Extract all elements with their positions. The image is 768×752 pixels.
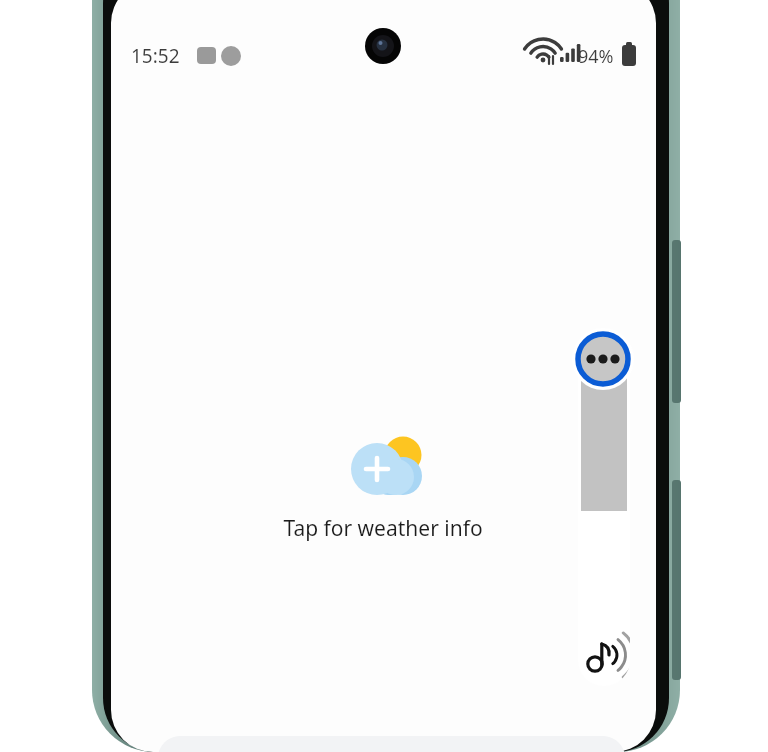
staticText: 15:52	[131, 43, 180, 69]
button[interactable]: Tap for weather info	[253, 430, 513, 550]
staticText: Tap for weather info	[283, 514, 483, 543]
staticText: 94%	[578, 44, 614, 69]
button[interactable]: More options	[572, 328, 634, 390]
button[interactable]: Edge panel	[578, 345, 630, 686]
